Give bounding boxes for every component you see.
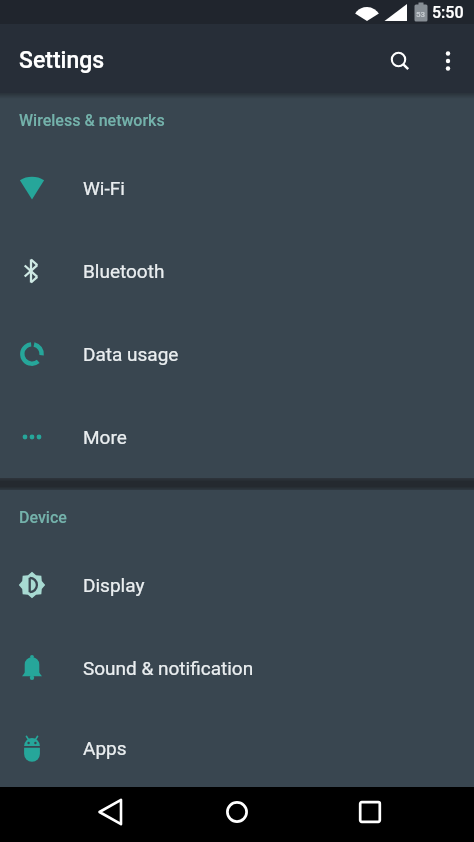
button[interactable]: Sound & notification [0, 626, 474, 709]
staticText: Settings [19, 47, 105, 74]
staticText: Data usage [83, 343, 179, 365]
button[interactable] [88, 790, 132, 834]
button[interactable]: More [0, 395, 474, 478]
button[interactable]: Data usage [0, 312, 474, 395]
staticText: Bluetooth [83, 260, 165, 282]
button[interactable] [215, 790, 259, 834]
staticText: Wi-Fi [83, 177, 125, 199]
staticText: More [83, 426, 127, 448]
staticText: Device [19, 508, 67, 527]
staticText: Wireless & networks [19, 111, 165, 130]
staticText: Apps [83, 737, 127, 759]
button[interactable] [348, 790, 392, 834]
button[interactable]: Bluetooth [0, 229, 474, 312]
button[interactable] [378, 39, 422, 83]
staticText: Sound & notification [83, 657, 254, 679]
staticText: 5:50 [432, 3, 464, 22]
staticText: 53 [416, 10, 426, 19]
button[interactable]: Display [0, 543, 474, 626]
button[interactable]: Wi-Fi [0, 146, 474, 229]
button[interactable]: Apps [0, 709, 474, 787]
staticText: Display [83, 574, 145, 596]
button[interactable] [428, 41, 468, 81]
